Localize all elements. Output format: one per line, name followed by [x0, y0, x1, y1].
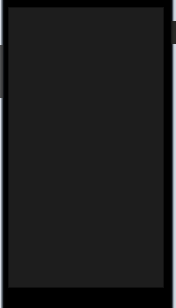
- button[interactable]: Phone screen: [0, 0, 176, 308]
